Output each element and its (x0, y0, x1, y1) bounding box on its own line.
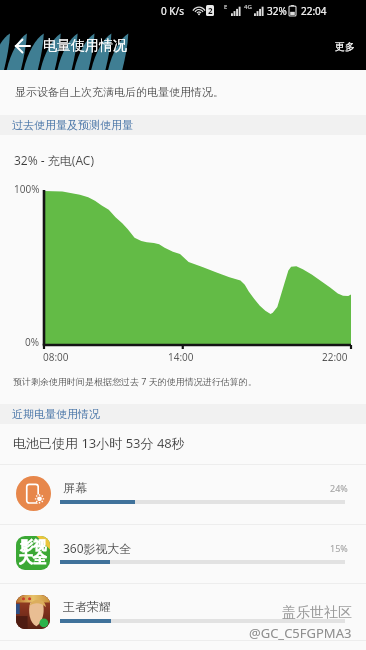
staticText: 2 (208, 5, 213, 16)
staticText: 0 K/s (161, 4, 185, 18)
staticText: 预计剩余使用时间是根据您过去 7 天的使用情况进行估算的。 (13, 375, 257, 387)
staticText: 显示设备自上次充满电后的电量使用情况。 (15, 85, 224, 99)
button[interactable]: Back (3, 22, 41, 70)
button[interactable]: 影视 (0, 524, 366, 583)
staticText: 08:00 (43, 350, 69, 364)
staticText: 14:00 (168, 350, 194, 364)
button[interactable]: 王者荣耀 (0, 583, 366, 640)
staticText: 过去使用量及预测使用量 (12, 118, 133, 132)
staticText: 近期电量使用情况 (12, 407, 100, 421)
staticText: 更多 (335, 40, 355, 53)
staticText: 22:00 (322, 350, 348, 364)
staticText: 32% (267, 4, 287, 18)
staticText: @GC_C5FGPMA3 (249, 624, 352, 642)
staticText: 电量使用情况 (43, 37, 127, 55)
staticText: 22:04 (301, 4, 327, 18)
staticText: 王者荣耀 (63, 599, 111, 614)
staticText: E (224, 3, 228, 11)
staticText: 影视 (20, 537, 46, 553)
staticText: 24% (330, 482, 348, 494)
staticText: 大全 (19, 550, 47, 567)
staticText: 15% (330, 542, 348, 554)
staticText: 盖乐世社区 (282, 604, 352, 622)
staticText: 电池已使用 13小时 53分 48秒 (13, 434, 185, 452)
button[interactable]: 更多 (324, 25, 366, 68)
staticText: 4G (244, 3, 252, 11)
staticText: 屏幕 (63, 480, 87, 495)
staticText: 0% (25, 335, 40, 349)
staticText: 32% - 充电(AC) (14, 152, 95, 168)
staticText: 360影视大全 (63, 540, 132, 556)
button[interactable]: 屏幕 (0, 464, 366, 524)
staticText: 100% (14, 182, 40, 196)
